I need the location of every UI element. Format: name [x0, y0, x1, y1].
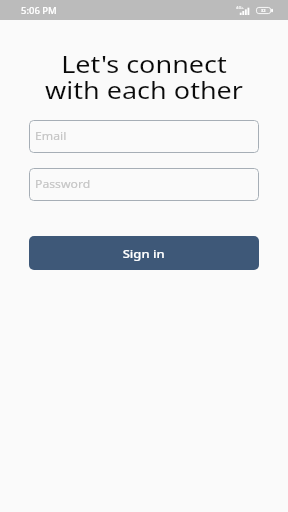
staticText: 32 [261, 8, 266, 13]
staticText: Let's connect with each other [0, 49, 288, 106]
button[interactable]: Sign in [29, 236, 259, 270]
other: Battery 32 percent [256, 7, 273, 14]
staticText: Email [35, 129, 67, 143]
staticText: Sign in [123, 246, 165, 261]
button[interactable]: Email [29, 120, 259, 153]
staticText: 5:06 PM [21, 5, 58, 16]
staticText: Password [35, 177, 91, 191]
staticText: 4G+ [236, 5, 244, 11]
other: Mobile signal [236, 6, 252, 15]
button[interactable]: Password [29, 168, 259, 201]
